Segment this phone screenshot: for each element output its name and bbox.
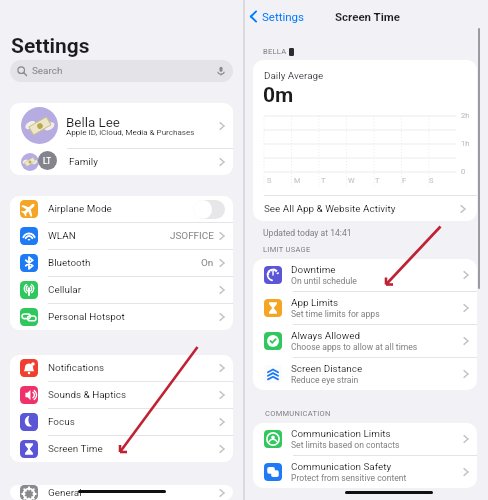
button[interactable]: Downtime <box>253 259 477 291</box>
staticText: Focus <box>48 416 75 428</box>
staticText: On <box>201 257 214 269</box>
staticText: Settings <box>11 34 90 59</box>
button[interactable]: Bluetooth <box>10 250 233 276</box>
staticText: Bella Lee <box>66 115 120 131</box>
staticText: 0 <box>461 167 466 176</box>
staticText: WLAN <box>48 230 76 242</box>
button[interactable]: Personal Hotspot <box>10 304 233 330</box>
staticText: M <box>294 176 301 185</box>
staticText: Notifications <box>48 362 105 374</box>
button[interactable]: Screen Distance <box>253 358 477 390</box>
button[interactable]: Settings <box>246 6 310 27</box>
button[interactable]: Search <box>10 60 233 82</box>
button[interactable]: Communication Safety <box>253 456 477 488</box>
button[interactable]: General <box>10 485 233 500</box>
staticText: Communication Safety <box>291 461 392 473</box>
button[interactable]: Focus <box>10 409 233 435</box>
staticText: 1h <box>461 139 470 148</box>
staticText: F <box>402 176 407 185</box>
staticText: S <box>429 176 434 185</box>
staticText: Always Allowed <box>291 330 360 342</box>
staticText: LT <box>43 156 52 166</box>
button[interactable]: Always Allowed <box>253 325 477 357</box>
staticText: Screen Time <box>48 443 103 455</box>
staticText: Settings <box>262 10 304 23</box>
staticText: S <box>267 176 272 185</box>
staticText: 0m <box>263 83 294 108</box>
staticText: Set limits based on contacts <box>291 440 400 450</box>
staticText: Airplane Mode <box>48 203 112 215</box>
button[interactable]: Screen Time <box>10 436 233 462</box>
staticText: Reduce eye strain <box>291 375 359 385</box>
button[interactable]: Bella Lee <box>10 103 233 148</box>
staticText: Cellular <box>48 284 82 296</box>
staticText: General <box>48 487 82 499</box>
staticText: Apple ID, iCloud, Media & Purchases <box>66 128 195 137</box>
staticText: Bluetooth <box>48 257 91 269</box>
button[interactable]: Sounds & Haptics <box>10 382 233 408</box>
staticText: Set time limits for apps <box>291 309 380 319</box>
staticText: Personal Hotspot <box>48 311 125 323</box>
staticText: App Limits <box>291 297 339 309</box>
staticText: T <box>321 176 326 185</box>
staticText: JSOFFICE <box>170 230 214 242</box>
staticText: Choose apps to allow at all times <box>291 342 418 352</box>
button[interactable]: Notifications <box>10 355 233 381</box>
button[interactable]: Communication Limits <box>253 423 477 455</box>
button[interactable]: See All App & Website Activity <box>253 196 477 221</box>
staticText: Communication Limits <box>291 428 391 440</box>
staticText: 2h <box>461 111 470 120</box>
button[interactable]: WLAN <box>10 223 233 249</box>
staticText: Daily Average <box>264 70 324 82</box>
staticText: Search <box>32 65 63 77</box>
staticText: Screen Distance <box>291 363 363 375</box>
staticText: On until schedule <box>291 276 357 286</box>
button[interactable]: App Limits <box>253 292 477 324</box>
button[interactable]: Airplane Mode <box>10 196 233 222</box>
staticText: W <box>348 176 355 185</box>
staticText: See All App & Website Activity <box>264 203 396 215</box>
staticText: COMMUNICATION <box>265 409 331 418</box>
staticText: BELLA <box>263 47 287 56</box>
staticText: Updated today at 14:41 <box>263 228 352 238</box>
staticText: T <box>375 176 380 185</box>
staticText: LIMIT USAGE <box>263 245 311 254</box>
staticText: Screen Time <box>335 10 400 23</box>
staticText: Downtime <box>291 264 336 276</box>
button[interactable]: LT <box>10 149 233 175</box>
staticText: Protect from sensitive content <box>291 473 407 483</box>
button[interactable]: Cellular <box>10 277 233 303</box>
staticText: Sounds & Haptics <box>48 389 127 401</box>
staticText: Family <box>69 156 98 168</box>
